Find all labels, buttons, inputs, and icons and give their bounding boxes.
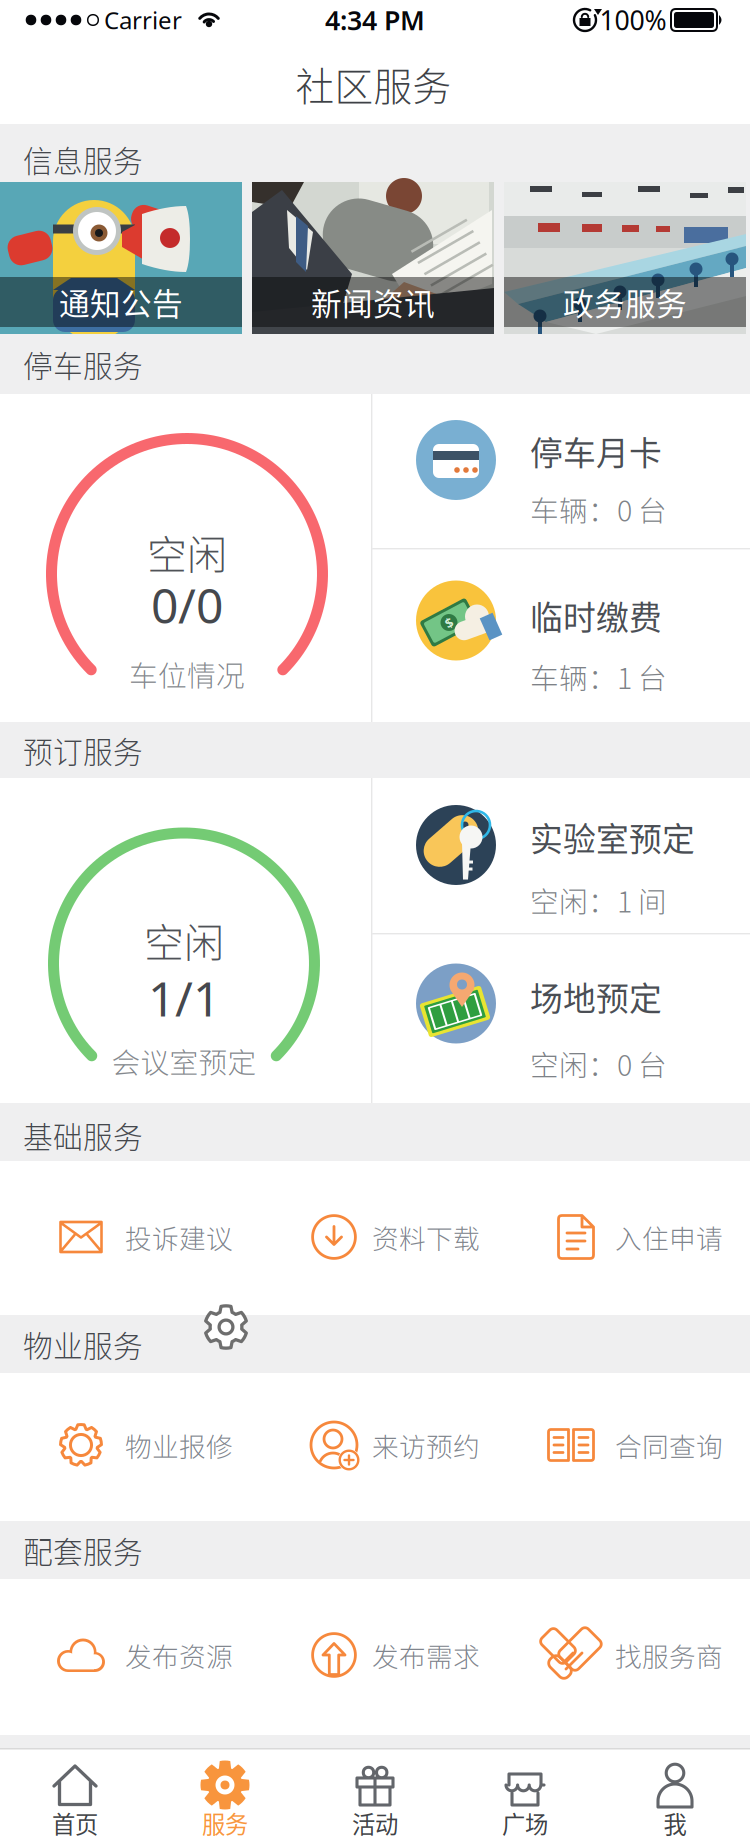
staticText: 停车月卡 [530,427,662,475]
staticText: 车辆：1 台 [530,656,667,697]
staticText: 政务服务 [563,280,687,324]
staticText: 新闻资讯 [311,280,435,324]
staticText: 空闲 [144,911,224,969]
staticText: 找服务商 [615,1636,723,1674]
staticText: 来访预约 [372,1426,480,1464]
button[interactable]: 找服务商 [510,1579,750,1735]
button[interactable]: 场地预定 [372,934,750,1103]
staticText: Carrier [104,4,182,36]
staticText: 车辆：0 台 [530,488,667,530]
staticText: 4:34 PM [325,2,425,38]
button[interactable]: 我 [600,1748,750,1846]
staticText: 合同查询 [615,1426,723,1464]
button[interactable]: 政务服务 [504,182,746,334]
staticText: 空闲：1 间 [530,879,667,921]
staticText: 信息服务 [23,137,143,181]
staticText: 0/0 [151,573,223,637]
staticText: 首页 [52,1806,98,1840]
staticText: 预订服务 [23,728,143,772]
staticText: 停车服务 [23,342,143,386]
button[interactable]: 物业报修 [40,1373,280,1521]
staticText: 1/1 [148,966,220,1030]
staticText: 物业报修 [125,1426,233,1464]
button[interactable]: 首页 [0,1748,150,1846]
button[interactable]: 投诉建议 [40,1161,280,1315]
staticText: 活动 [352,1806,398,1840]
staticText: 服务 [202,1806,248,1840]
button[interactable]: 资料下载 [290,1161,530,1315]
staticText: 资料下载 [372,1218,480,1256]
staticText: 发布需求 [372,1636,480,1674]
staticText: 广场 [502,1806,548,1840]
button[interactable]: 空闲 [0,394,371,722]
button[interactable]: 活动 [300,1748,450,1846]
button[interactable]: 广场 [450,1748,600,1846]
staticText: 临时缴费 [530,592,662,639]
staticText: 车位情况 [129,653,245,695]
button[interactable]: 入住申请 [510,1161,750,1315]
button[interactable]: 发布资源 [40,1579,280,1735]
staticText: 投诉建议 [125,1218,233,1256]
button[interactable]: 通知公告 [0,182,242,334]
button[interactable]: 新闻资讯 [252,182,494,334]
button[interactable]: 服务 [150,1748,300,1846]
staticText: 空闲：0 台 [530,1043,667,1084]
staticText: 物业服务 [23,1322,143,1366]
staticText: 会议室预定 [111,1040,256,1082]
staticText: 实验室预定 [530,813,695,861]
button[interactable]: 发布需求 [290,1579,530,1735]
staticText: 100% [599,2,666,38]
staticText: 我 [663,1806,686,1840]
staticText: 配套服务 [23,1528,143,1572]
button[interactable]: 来访预约 [290,1373,530,1521]
staticText: 场地预定 [530,973,662,1020]
staticText: 入住申请 [615,1218,723,1256]
button[interactable]: 合同查询 [510,1373,750,1521]
staticText: 基础服务 [23,1113,143,1157]
staticText: 社区服务 [295,56,451,112]
staticText: 通知公告 [59,280,183,324]
button[interactable]: 实验室预定 [372,778,750,933]
staticText: 发布资源 [125,1636,233,1674]
staticText: $ [445,614,453,631]
button[interactable]: $ [372,549,750,722]
button[interactable]: 停车月卡 [372,394,750,548]
staticText: 空闲 [147,523,227,581]
button[interactable]: 空闲 [0,778,371,1103]
